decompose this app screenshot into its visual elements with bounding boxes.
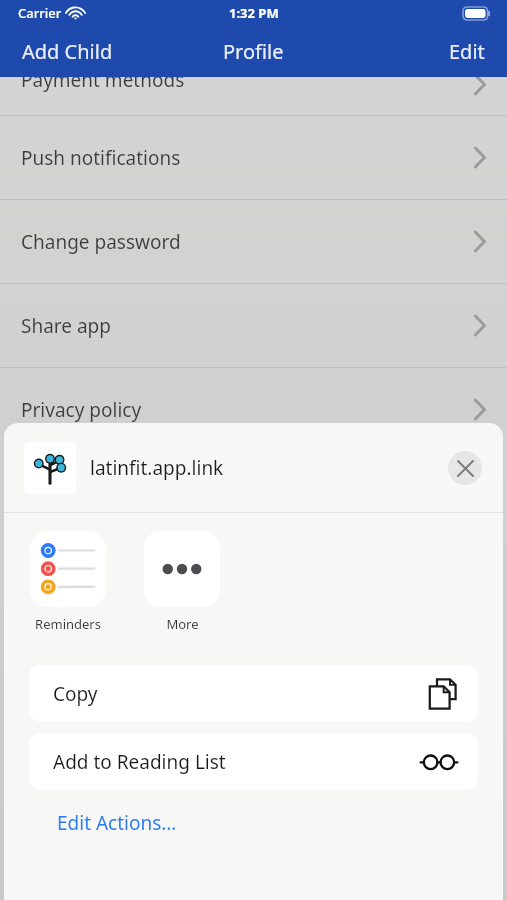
button[interactable]: Add to Reading List — [29, 733, 478, 790]
staticText: Change password — [21, 229, 181, 255]
button[interactable]: Close — [448, 451, 482, 485]
button[interactable]: Copy — [29, 665, 478, 722]
staticText: Push notifications — [21, 145, 181, 171]
button[interactable]: Edit — [427, 30, 507, 73]
staticText: Edit Actions… — [57, 810, 177, 836]
staticText: latinfit.app.link — [90, 455, 224, 481]
staticText: 1:32 PM — [229, 4, 279, 22]
staticText: Add to Reading List — [53, 749, 226, 775]
button[interactable]: Privacy policy — [0, 368, 507, 451]
button[interactable]: Add Child — [0, 30, 135, 73]
staticText: Edit — [449, 38, 485, 65]
staticText: More — [166, 615, 199, 633]
staticText: Add Child — [22, 38, 113, 65]
button[interactable]: Push notifications — [0, 116, 507, 199]
staticText: Share app — [21, 313, 111, 339]
button[interactable]: Change password — [0, 200, 507, 283]
button[interactable]: Reminders — [29, 531, 107, 633]
button[interactable]: More — [143, 531, 221, 633]
staticText: Carrier — [18, 4, 62, 22]
staticText: Profile — [223, 38, 284, 65]
button[interactable]: Edit Actions… — [55, 806, 179, 840]
staticText: Copy — [53, 681, 98, 707]
staticText: Privacy policy — [21, 397, 142, 423]
button[interactable]: Share app — [0, 284, 507, 367]
staticText: Payment methods — [21, 67, 185, 93]
staticText: Reminders — [35, 615, 101, 633]
